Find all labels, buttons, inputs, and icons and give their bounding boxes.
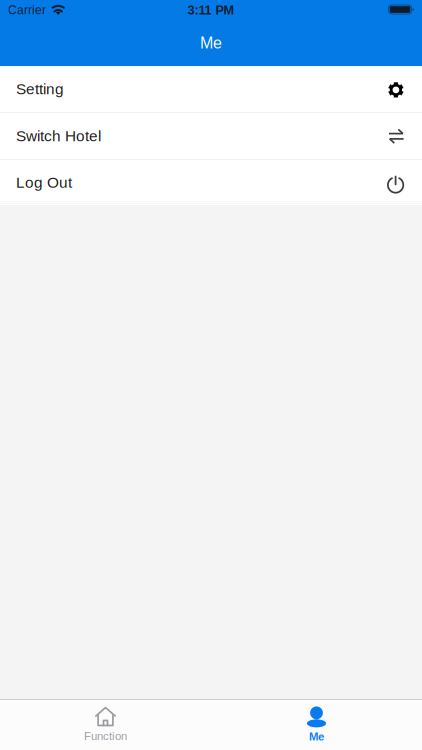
button[interactable]: Log Out [0,160,422,205]
staticText: Carrier [8,3,46,17]
staticText: 3:11 PM [187,3,234,17]
button[interactable]: Me [211,700,422,750]
staticText: Me [309,730,324,743]
button[interactable]: Function [0,700,211,750]
button[interactable]: Switch Hotel [0,113,422,159]
staticText: Switch Hotel [16,127,101,144]
staticText: Log Out [16,174,72,191]
staticText: Me [200,34,222,52]
button[interactable]: Setting [0,66,422,112]
staticText: Setting [16,80,64,97]
staticText: Function [84,730,127,742]
